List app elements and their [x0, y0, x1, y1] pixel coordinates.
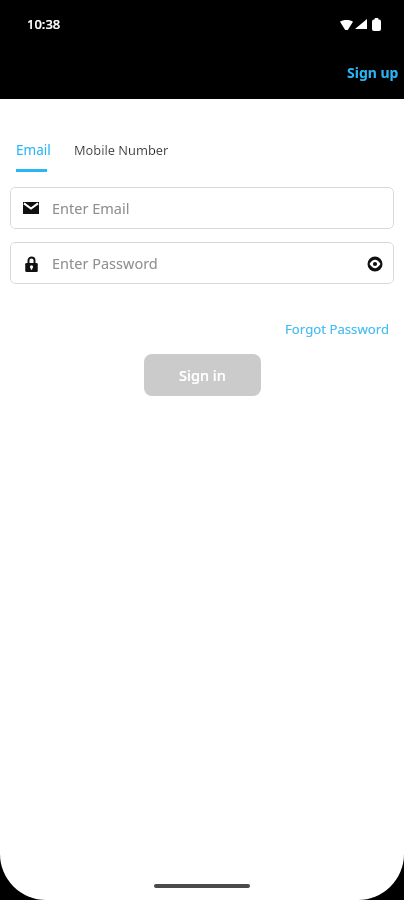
button[interactable]: Email	[0, 132, 61, 178]
staticText: 10:38	[27, 15, 61, 33]
button[interactable]: Enter Email	[10, 187, 394, 229]
button[interactable]: Enter Password	[10, 242, 394, 284]
staticText: Sign up	[347, 63, 399, 82]
button[interactable]: Show password	[365, 254, 385, 274]
staticText: Mobile Number	[74, 141, 169, 158]
staticText: Email	[16, 141, 51, 159]
staticText: Sign in	[179, 365, 226, 385]
button[interactable]: Sign in	[144, 354, 261, 396]
staticText: Enter Email	[52, 198, 130, 218]
staticText: Enter Password	[52, 253, 158, 273]
staticText: Forgot Password	[285, 320, 390, 338]
button[interactable]: Sign up	[335, 57, 404, 88]
button[interactable]: Mobile Number	[74, 132, 169, 178]
button[interactable]: Forgot Password	[275, 317, 404, 341]
